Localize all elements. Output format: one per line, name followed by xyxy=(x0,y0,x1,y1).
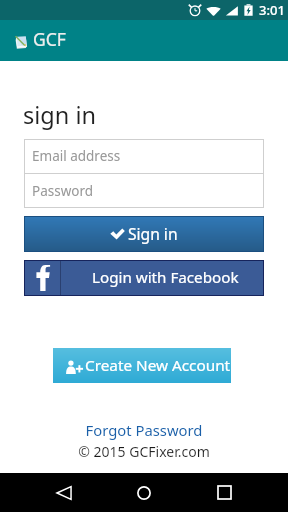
staticText: Sign in xyxy=(128,223,178,244)
staticText: sign in xyxy=(23,99,96,131)
button[interactable]: Recents xyxy=(200,473,248,512)
staticText: Password xyxy=(32,182,94,200)
button[interactable]: Forgot Password xyxy=(0,420,288,440)
staticText: Email address xyxy=(32,147,121,165)
staticText: GCF xyxy=(33,27,66,51)
button[interactable]: Back xyxy=(40,473,88,512)
button[interactable]: Sign in xyxy=(24,216,264,252)
staticText: © 2015 GCFixer.com xyxy=(0,442,288,461)
button[interactable]: Create New Account xyxy=(53,348,231,383)
staticText: Login with Facebook xyxy=(92,267,239,288)
staticText: 3:01 xyxy=(259,1,285,19)
button[interactable]: Email address xyxy=(24,139,264,173)
staticText: Create New Account xyxy=(85,355,231,376)
button[interactable]: Home xyxy=(120,473,168,512)
button[interactable]: Password xyxy=(24,174,264,208)
button[interactable]: Login with Facebook xyxy=(24,260,264,296)
